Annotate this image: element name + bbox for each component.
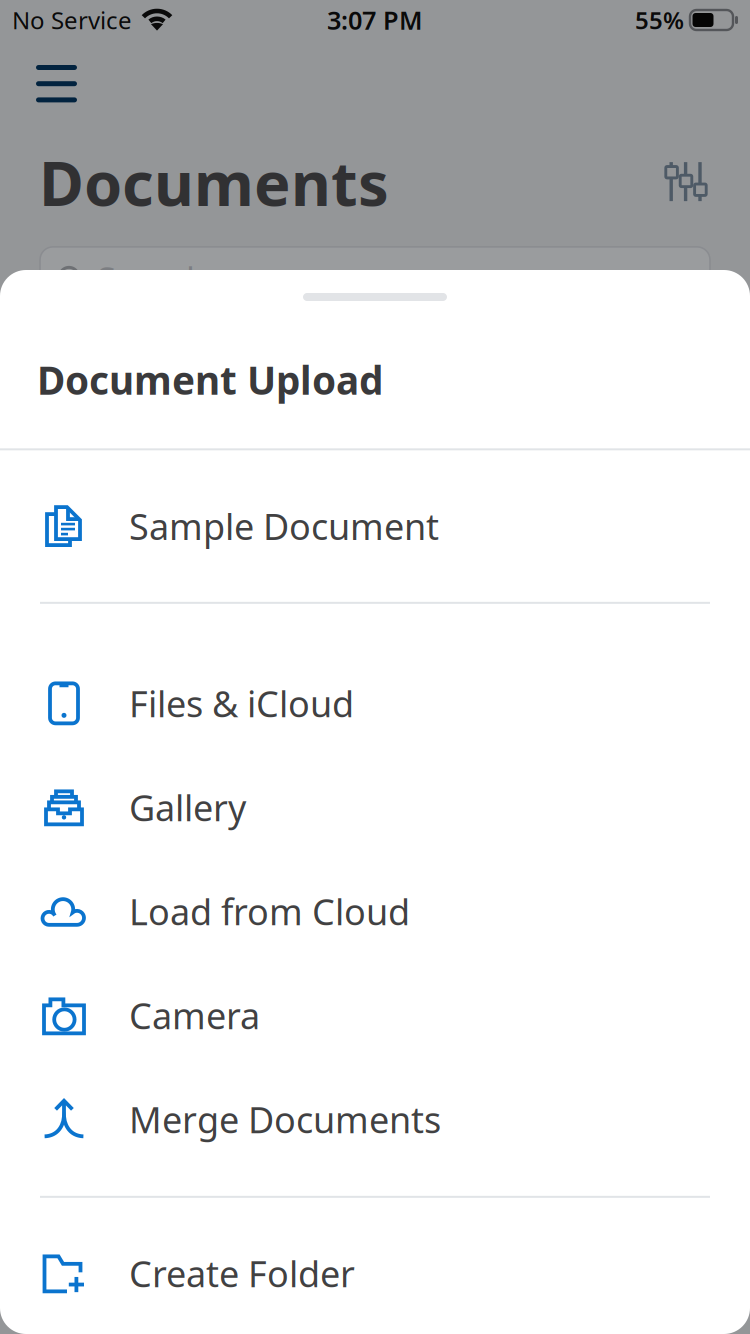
button[interactable]: Sample Document	[0, 450, 750, 602]
staticText: Merge Documents	[129, 1095, 441, 1143]
button[interactable]: Camera	[0, 963, 750, 1067]
button[interactable]: Gallery	[0, 755, 750, 859]
staticText: Documents	[39, 141, 389, 223]
staticText: Create Folder	[129, 1249, 355, 1297]
staticText: 3:07 PM	[327, 3, 423, 37]
staticText: 55%	[635, 4, 684, 36]
button[interactable]: Search	[40, 247, 710, 311]
button[interactable]: Menu	[24, 55, 89, 112]
staticText: Gallery	[129, 783, 246, 831]
button[interactable]: Load from Cloud	[0, 859, 750, 963]
button[interactable]: Create Folder	[0, 1221, 750, 1325]
staticText: Search	[97, 256, 207, 302]
button[interactable]: Merge Documents	[0, 1067, 750, 1171]
staticText: No Service	[12, 4, 132, 36]
button[interactable]: Filter	[666, 161, 706, 203]
staticText: Files & iCloud	[129, 679, 354, 727]
staticText: Load from Cloud	[129, 887, 410, 935]
staticText: Sample Document	[129, 502, 439, 550]
button[interactable]: Files & iCloud	[0, 651, 750, 755]
staticText: Camera	[129, 991, 260, 1039]
staticText: Document Upload	[37, 354, 383, 405]
